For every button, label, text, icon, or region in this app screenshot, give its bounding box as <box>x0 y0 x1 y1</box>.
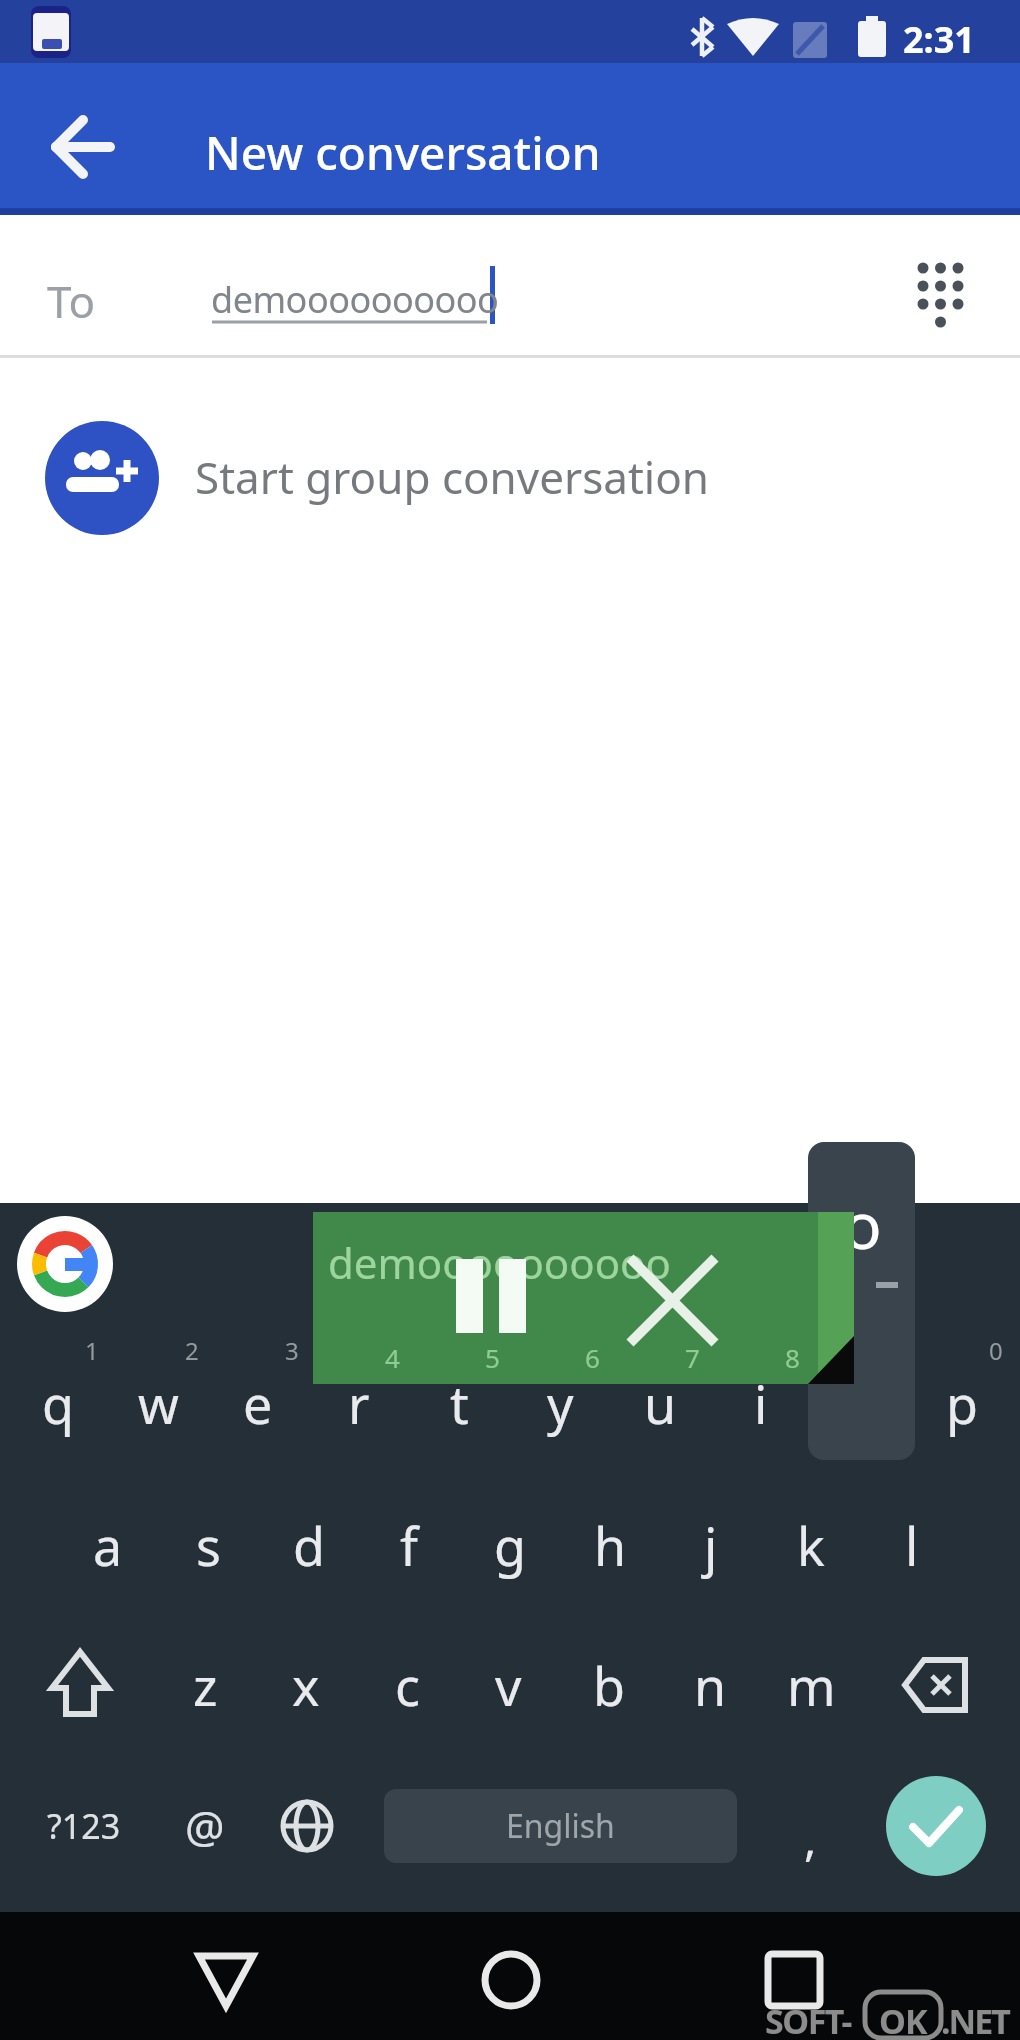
button[interactable]: a <box>48 1499 168 1591</box>
button[interactable]: n <box>650 1639 770 1731</box>
staticText: b <box>593 1650 625 1721</box>
button[interactable] <box>40 1645 120 1725</box>
staticText: 7 <box>685 1340 700 1375</box>
staticText: w <box>138 1368 179 1439</box>
staticText: o <box>845 1368 877 1439</box>
button[interactable] <box>886 1776 986 1876</box>
staticText: New conversation <box>205 121 601 184</box>
staticText: @ <box>185 1796 225 1856</box>
staticText: 7 <box>687 1334 701 1367</box>
staticText: SOFT- <box>765 1998 851 2040</box>
staticText: m <box>787 1650 836 1721</box>
staticText: x <box>292 1650 320 1721</box>
staticText: 0 <box>989 1334 1003 1367</box>
button[interactable]: f <box>349 1499 469 1591</box>
button[interactable]: ?123 <box>14 1789 154 1863</box>
staticText: .NET <box>941 1998 1009 2040</box>
staticText: y <box>547 1368 574 1439</box>
button[interactable]: h <box>550 1499 670 1591</box>
button[interactable] <box>744 1936 842 2024</box>
staticText: 2 <box>185 1334 199 1367</box>
button[interactable]: s <box>148 1499 268 1591</box>
button[interactable]: d <box>249 1499 369 1591</box>
button[interactable]: l <box>852 1499 972 1591</box>
button[interactable]: q <box>0 1357 118 1449</box>
button[interactable] <box>180 1940 272 2024</box>
button[interactable]: u <box>600 1357 720 1449</box>
button[interactable]: j <box>651 1499 771 1591</box>
staticText: 4 <box>385 1340 400 1375</box>
staticText: 3 <box>285 1334 299 1367</box>
button[interactable]: b <box>549 1639 669 1731</box>
staticText: English <box>506 1804 615 1848</box>
button[interactable]: i <box>701 1357 821 1449</box>
staticText: f <box>400 1510 418 1581</box>
button[interactable]: p <box>902 1357 1020 1449</box>
button[interactable]: o <box>801 1357 921 1449</box>
staticText: 6 <box>585 1340 600 1375</box>
button[interactable]: @ <box>145 1784 265 1868</box>
staticText: z <box>193 1650 218 1721</box>
button[interactable] <box>0 216 1020 355</box>
staticText: 2:31 <box>903 15 975 64</box>
staticText: j <box>704 1510 718 1581</box>
staticText: o <box>843 1181 882 1268</box>
button[interactable]: r <box>299 1357 419 1449</box>
button[interactable]: m <box>751 1639 871 1731</box>
staticText: q <box>42 1368 74 1439</box>
staticText: p <box>946 1368 978 1439</box>
staticText: 6 <box>587 1334 601 1367</box>
button[interactable]: w <box>98 1357 218 1449</box>
button[interactable]: v <box>448 1639 568 1731</box>
button[interactable]: k <box>751 1499 871 1591</box>
staticText: l <box>905 1510 919 1581</box>
staticText: c <box>395 1650 420 1721</box>
staticText: d <box>293 1510 325 1581</box>
staticText: demoooooooooo <box>328 1234 671 1291</box>
staticText: 8 <box>785 1340 800 1375</box>
button[interactable] <box>313 1212 854 1384</box>
staticText: demoooooooooo <box>211 275 499 324</box>
staticText: g <box>494 1510 526 1581</box>
button[interactable]: z <box>145 1639 265 1731</box>
button[interactable]: , <box>750 1795 870 1881</box>
staticText: , <box>804 1807 817 1870</box>
staticText: a <box>93 1510 123 1581</box>
staticText: r <box>348 1368 370 1439</box>
staticText: 8 <box>788 1334 802 1367</box>
staticText: OK <box>879 1998 927 2040</box>
staticText: Start group conversation <box>195 447 709 507</box>
staticText: 4 <box>386 1334 400 1367</box>
staticText: n <box>694 1650 727 1721</box>
staticText: v <box>495 1650 522 1721</box>
staticText: 1 <box>85 1334 99 1367</box>
button[interactable]: g <box>450 1499 570 1591</box>
button[interactable]: Start group conversation <box>192 435 712 519</box>
staticText: e <box>243 1368 273 1439</box>
button[interactable]: t <box>399 1357 519 1449</box>
button[interactable]: English <box>384 1789 737 1863</box>
button[interactable]: y <box>500 1357 620 1449</box>
button[interactable] <box>40 416 164 540</box>
staticText: h <box>594 1510 627 1581</box>
staticText: i <box>754 1368 768 1439</box>
staticText: t <box>450 1368 469 1439</box>
button[interactable]: c <box>347 1639 467 1731</box>
staticText: u <box>644 1368 677 1439</box>
button[interactable]: e <box>198 1357 318 1449</box>
button[interactable] <box>895 1645 980 1725</box>
staticText: s <box>196 1510 221 1581</box>
staticText: 5 <box>486 1334 500 1367</box>
staticText: 5 <box>485 1340 500 1375</box>
staticText: ?123 <box>47 1803 121 1849</box>
staticText: To <box>47 271 96 331</box>
staticText: k <box>797 1510 825 1581</box>
button[interactable] <box>465 1936 557 2024</box>
button[interactable]: x <box>246 1639 366 1731</box>
